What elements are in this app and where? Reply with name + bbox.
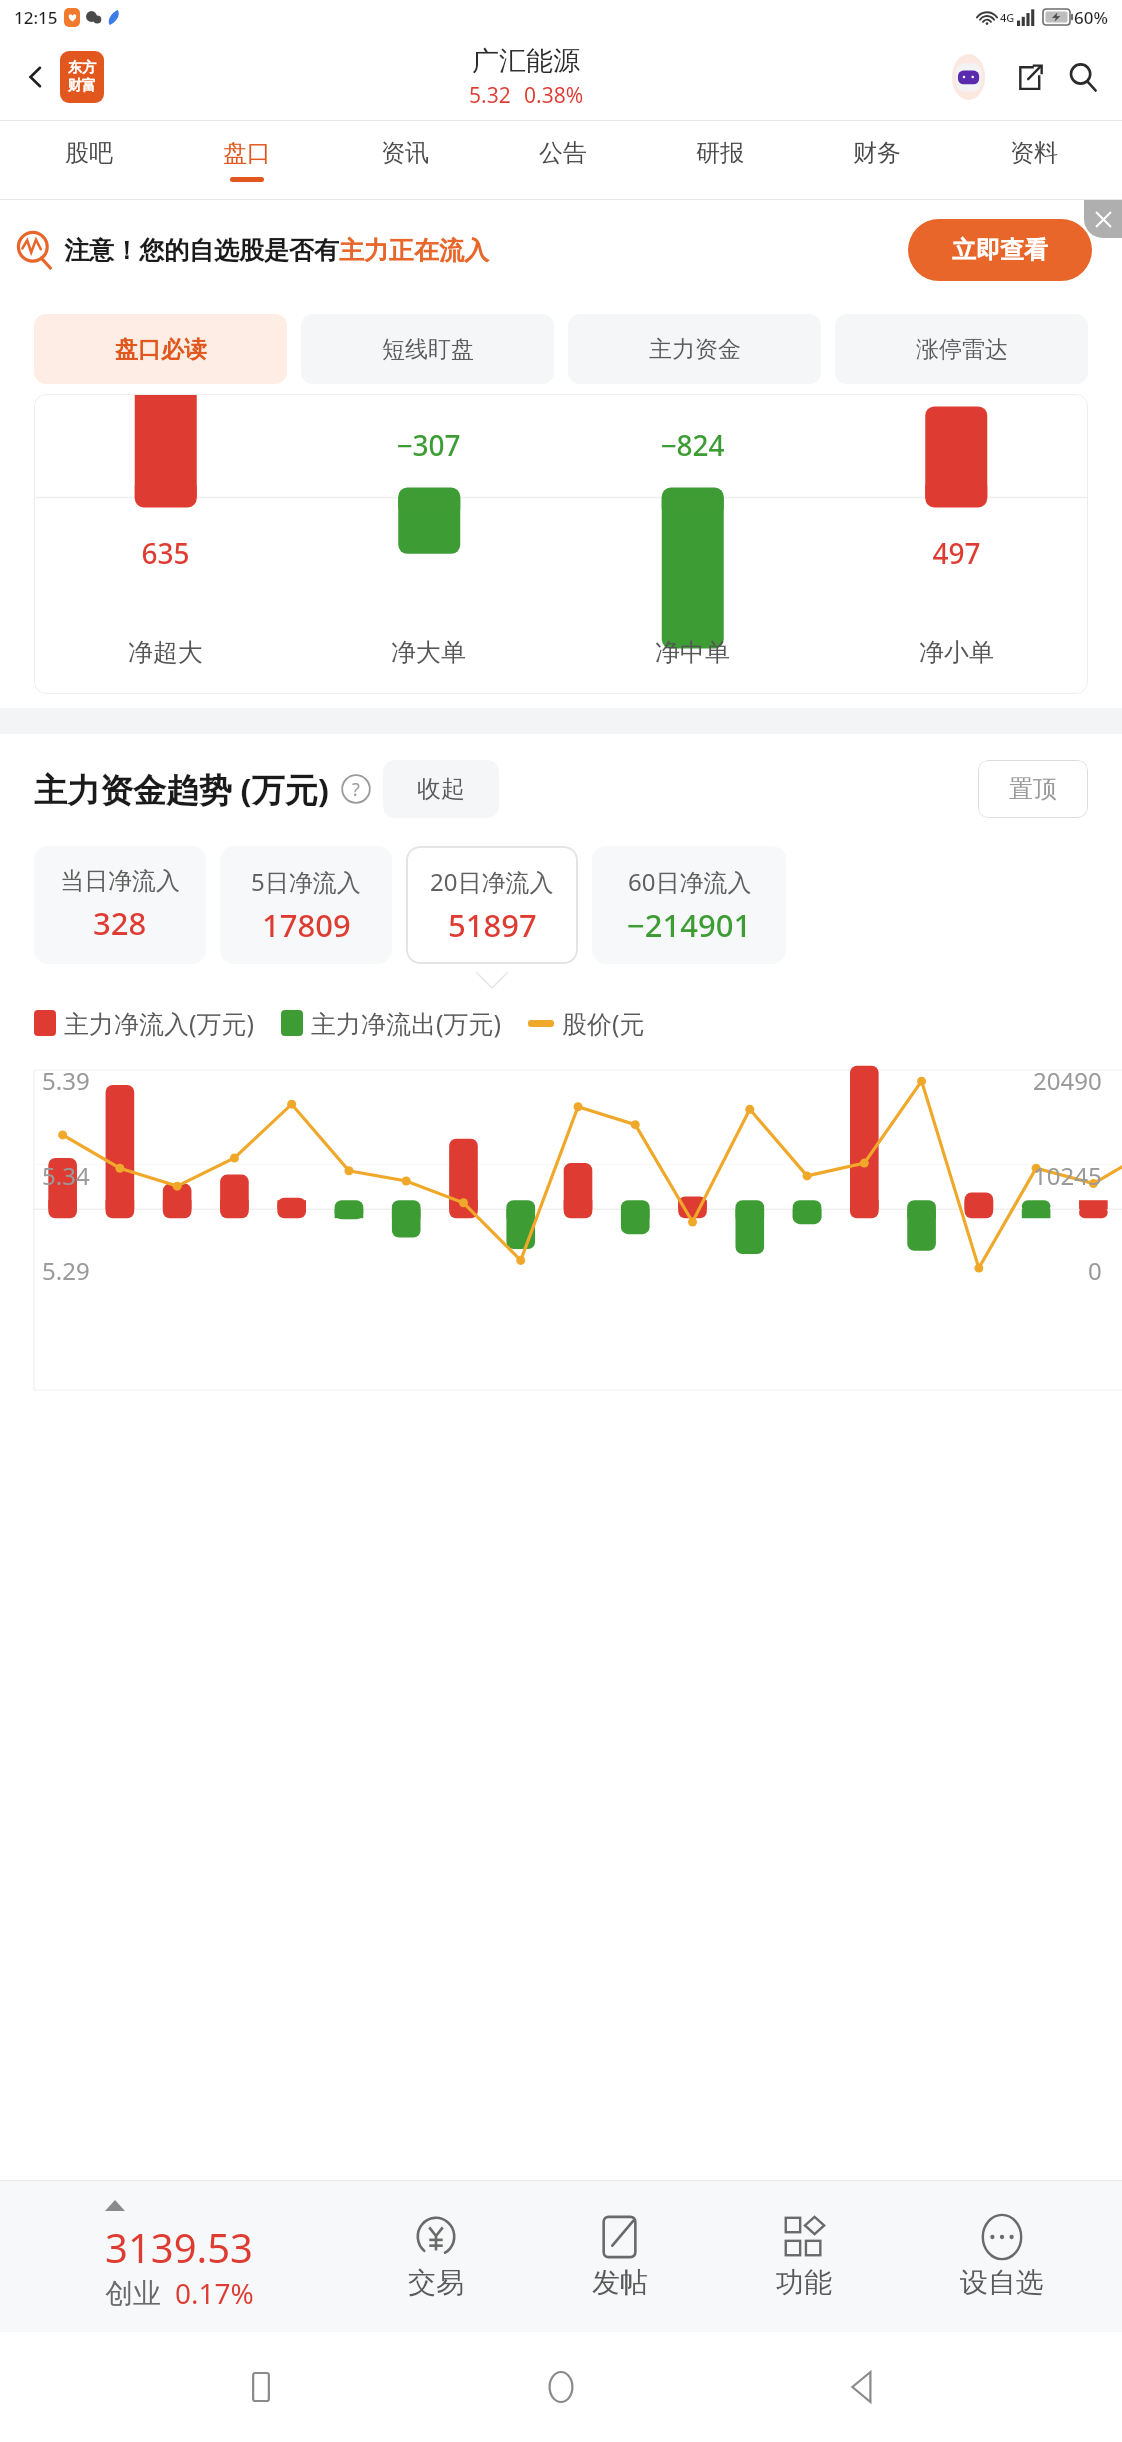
staticText: 0.38%: [524, 81, 584, 110]
button[interactable]: Home: [521, 2347, 601, 2427]
staticText: 12:15: [14, 6, 58, 29]
staticText: 研报: [696, 138, 744, 168]
button[interactable]: Back: [12, 53, 60, 101]
staticText: 4G: [1000, 10, 1015, 25]
staticText: 功能: [776, 2265, 832, 2300]
staticText: 主力资金: [649, 335, 741, 364]
button[interactable]: 短线盯盘: [301, 314, 554, 384]
button[interactable]: 60日净流入: [592, 846, 786, 964]
button[interactable]: 主力资金: [568, 314, 821, 384]
button[interactable]: Help: [339, 772, 373, 806]
button[interactable]: 公告: [484, 121, 641, 199]
staticText: 主力正在流入: [339, 235, 489, 266]
staticText: 17809: [262, 904, 351, 946]
staticText: 设自选: [960, 2265, 1044, 2300]
staticText: 净小单: [919, 637, 994, 668]
button[interactable]: 置顶: [978, 760, 1088, 818]
staticText: 328: [93, 902, 147, 944]
button[interactable]: 盘口必读: [34, 314, 287, 384]
staticText: 20490: [1033, 1064, 1102, 1097]
staticText: 5.29: [42, 1254, 90, 1287]
staticText: 5.34: [42, 1159, 90, 1192]
button[interactable]: 收起: [383, 760, 499, 818]
staticText: 5.39: [42, 1064, 90, 1097]
staticText: 短线盯盘: [382, 335, 474, 364]
button[interactable]: 盘口: [168, 121, 326, 199]
button[interactable]: 资讯: [326, 121, 484, 199]
staticText: 主力净流入(万元): [64, 1006, 255, 1040]
staticText: 主力资金趋势 (万元): [34, 767, 329, 812]
staticText: 盘口: [223, 138, 271, 168]
staticText: 东方: [68, 59, 96, 77]
staticText: 60日净流入: [628, 865, 752, 898]
staticText: 涨停雷达: [916, 335, 1008, 364]
staticText: 交易: [408, 2265, 464, 2300]
staticText: 股吧: [65, 138, 113, 168]
staticText: 51897: [448, 904, 537, 946]
staticText: 净超大: [128, 637, 203, 668]
staticText: −824: [660, 426, 725, 464]
button[interactable]: 3139.53: [14, 2180, 344, 2332]
staticText: 主力净流出(万元): [311, 1006, 502, 1040]
staticText: 发帖: [592, 2265, 648, 2300]
staticText: 广汇能源: [472, 44, 580, 78]
button[interactable]: 立即查看: [908, 219, 1092, 281]
staticText: 股价(元: [562, 1006, 645, 1040]
button[interactable]: Search: [1056, 50, 1110, 104]
staticText: 盘口必读: [115, 335, 207, 364]
button[interactable]: 当日净流入: [34, 846, 206, 964]
staticText: 资料: [1010, 138, 1058, 168]
staticText: 635: [141, 534, 190, 572]
staticText: ?: [352, 777, 360, 802]
button[interactable]: 5日净流入: [220, 846, 392, 964]
button[interactable]: Share: [1002, 50, 1056, 104]
button[interactable]: 发帖: [528, 2180, 712, 2332]
button[interactable]: 涨停雷达: [835, 314, 1088, 384]
staticText: 资讯: [381, 138, 429, 168]
button[interactable]: 资料: [955, 121, 1112, 199]
staticText: 5.32: [469, 81, 511, 110]
staticText: 3139.53: [105, 2220, 253, 2274]
button[interactable]: Back: [822, 2347, 902, 2427]
staticText: 10245: [1033, 1159, 1102, 1192]
staticText: 财富: [68, 77, 96, 95]
staticText: 0.17%: [175, 2274, 254, 2312]
staticText: 置顶: [1009, 774, 1057, 804]
button[interactable]: Recents: [221, 2347, 301, 2427]
button[interactable]: 研报: [641, 121, 798, 199]
staticText: 5日净流入: [251, 865, 361, 898]
staticText: 20日净流入: [430, 865, 554, 898]
staticText: 当日净流入: [60, 866, 180, 896]
staticText: 立即查看: [952, 235, 1048, 265]
button[interactable]: AI assistant: [948, 50, 1002, 104]
staticText: 收起: [417, 774, 465, 804]
button[interactable]: 财务: [798, 121, 955, 199]
button[interactable]: 功能: [712, 2180, 896, 2332]
button[interactable]: 股吧: [10, 121, 168, 199]
button[interactable]: 20日净流入: [406, 846, 578, 964]
staticText: 净中单: [655, 637, 730, 668]
staticText: 财务: [853, 138, 901, 168]
button[interactable]: 设自选: [896, 2180, 1108, 2332]
staticText: 0: [1088, 1254, 1102, 1287]
staticText: 公告: [539, 138, 587, 168]
staticText: 60%: [1074, 6, 1108, 29]
button[interactable]: Close ad: [1084, 200, 1122, 238]
staticText: 497: [932, 534, 981, 572]
button[interactable]: 交易: [344, 2180, 528, 2332]
button[interactable]: East Money: [60, 51, 104, 103]
staticText: −307: [396, 426, 461, 464]
staticText: 净大单: [391, 637, 466, 668]
staticText: 创业: [105, 2276, 161, 2311]
staticText: 注意！您的自选股是否有: [64, 235, 339, 266]
staticText: −214901: [627, 904, 752, 946]
